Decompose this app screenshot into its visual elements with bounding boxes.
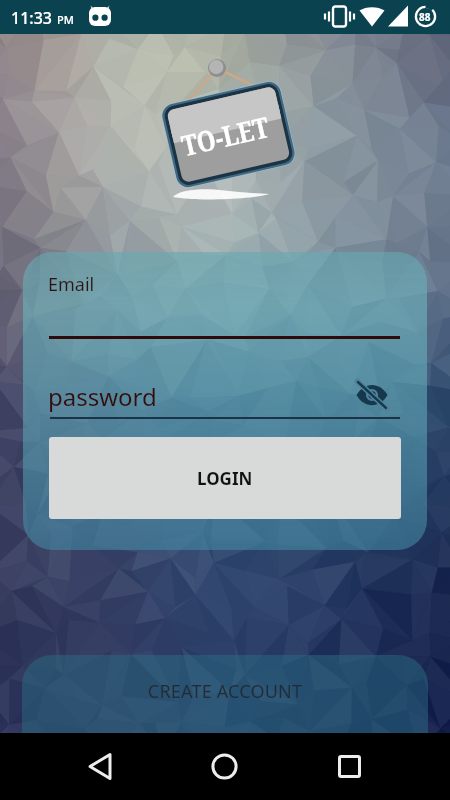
staticText: PM [57, 12, 74, 27]
button[interactable]: Recent apps [330, 737, 390, 797]
staticText: Email [48, 272, 95, 297]
staticText: CREATE ACCOUNT [22, 679, 428, 704]
button[interactable]: Toggle password visibility [375, 430, 415, 470]
staticText: 88 [419, 10, 431, 24]
staticText: 11:33 [11, 7, 52, 29]
staticText: password [48, 380, 157, 413]
button[interactable]: CREATE ACCOUNT [22, 655, 428, 800]
staticText: TO-LET [178, 107, 271, 157]
button[interactable]: Back [60, 737, 120, 797]
button[interactable]: LOGIN [49, 437, 401, 519]
button[interactable]: Home [195, 737, 255, 797]
staticText: LOGIN [197, 467, 253, 490]
